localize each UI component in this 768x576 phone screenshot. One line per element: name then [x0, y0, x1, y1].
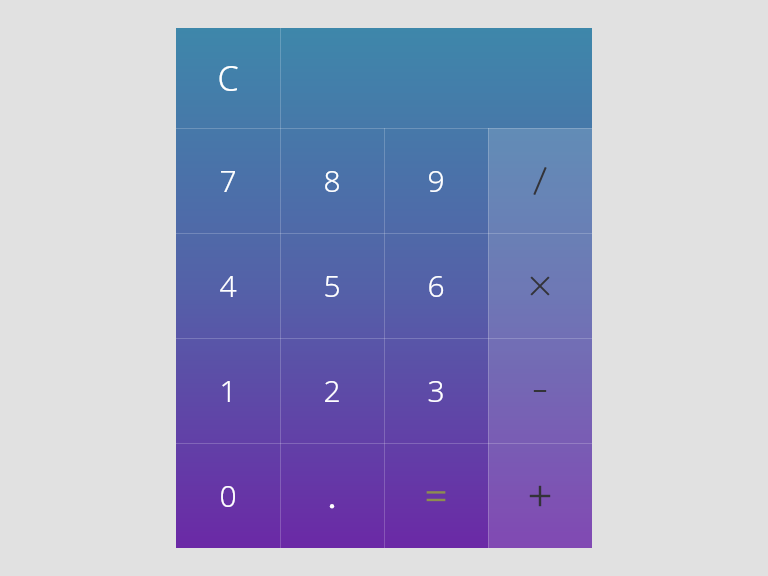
button[interactable]: 6	[384, 233, 488, 338]
staticText: 0	[219, 475, 237, 516]
button[interactable]: C	[176, 28, 280, 128]
staticText: 6	[427, 265, 445, 306]
staticText: 9	[427, 160, 445, 201]
button[interactable]: 4	[176, 233, 280, 338]
button[interactable]: 8	[280, 128, 384, 233]
staticText: 5	[323, 265, 341, 306]
staticText: 1	[219, 370, 237, 411]
button[interactable]: 5	[280, 233, 384, 338]
button[interactable]: 3	[384, 338, 488, 443]
button[interactable]: 7	[176, 128, 280, 233]
button[interactable]: Equals	[384, 443, 488, 548]
staticText: 7	[219, 160, 237, 201]
button[interactable]: 2	[280, 338, 384, 443]
staticText: 3	[427, 370, 445, 411]
button[interactable]: 0	[176, 443, 280, 548]
staticText: 4	[219, 265, 237, 306]
button[interactable]: Subtract	[488, 338, 592, 443]
button[interactable]: Multiply	[488, 233, 592, 338]
button[interactable]: Divide	[488, 128, 592, 233]
staticText: C	[217, 55, 239, 101]
button[interactable]: 1	[176, 338, 280, 443]
button[interactable]: 9	[384, 128, 488, 233]
staticText: 2	[323, 370, 341, 411]
button[interactable]: Add	[488, 443, 592, 548]
staticText: 8	[323, 160, 341, 201]
button[interactable]: Decimal point	[280, 443, 384, 548]
